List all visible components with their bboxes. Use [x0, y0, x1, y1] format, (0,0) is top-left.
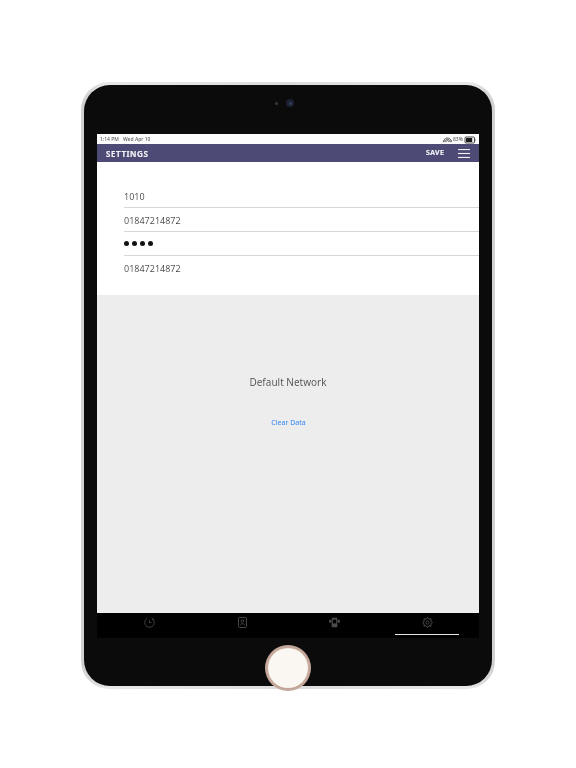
staticText: 01847214872	[124, 262, 181, 274]
button[interactable]	[97, 232, 479, 255]
button[interactable]: Clear Data	[263, 415, 314, 431]
staticText: SAVE	[426, 148, 445, 158]
button[interactable]: Settings	[387, 613, 467, 638]
button[interactable]: Keypad	[294, 613, 374, 638]
staticText: Clear Data	[271, 418, 306, 428]
button[interactable]: 01847214872	[97, 208, 479, 231]
staticText: SETTINGS	[106, 148, 149, 159]
staticText: Default Network	[249, 375, 327, 389]
button[interactable]: SAVE	[423, 145, 448, 161]
button[interactable]: Menu	[456, 145, 472, 161]
button[interactable]: Contacts	[202, 613, 282, 638]
button[interactable]: History	[109, 613, 189, 638]
staticText: 1:14 PM	[100, 136, 119, 143]
button[interactable]: 1010	[97, 184, 479, 207]
staticText: 1010	[124, 190, 145, 202]
staticText: 83%	[453, 136, 463, 143]
staticText: Wed Apr 10	[123, 136, 151, 143]
button[interactable]: 01847214872	[97, 256, 479, 279]
staticText: 01847214872	[124, 214, 181, 226]
